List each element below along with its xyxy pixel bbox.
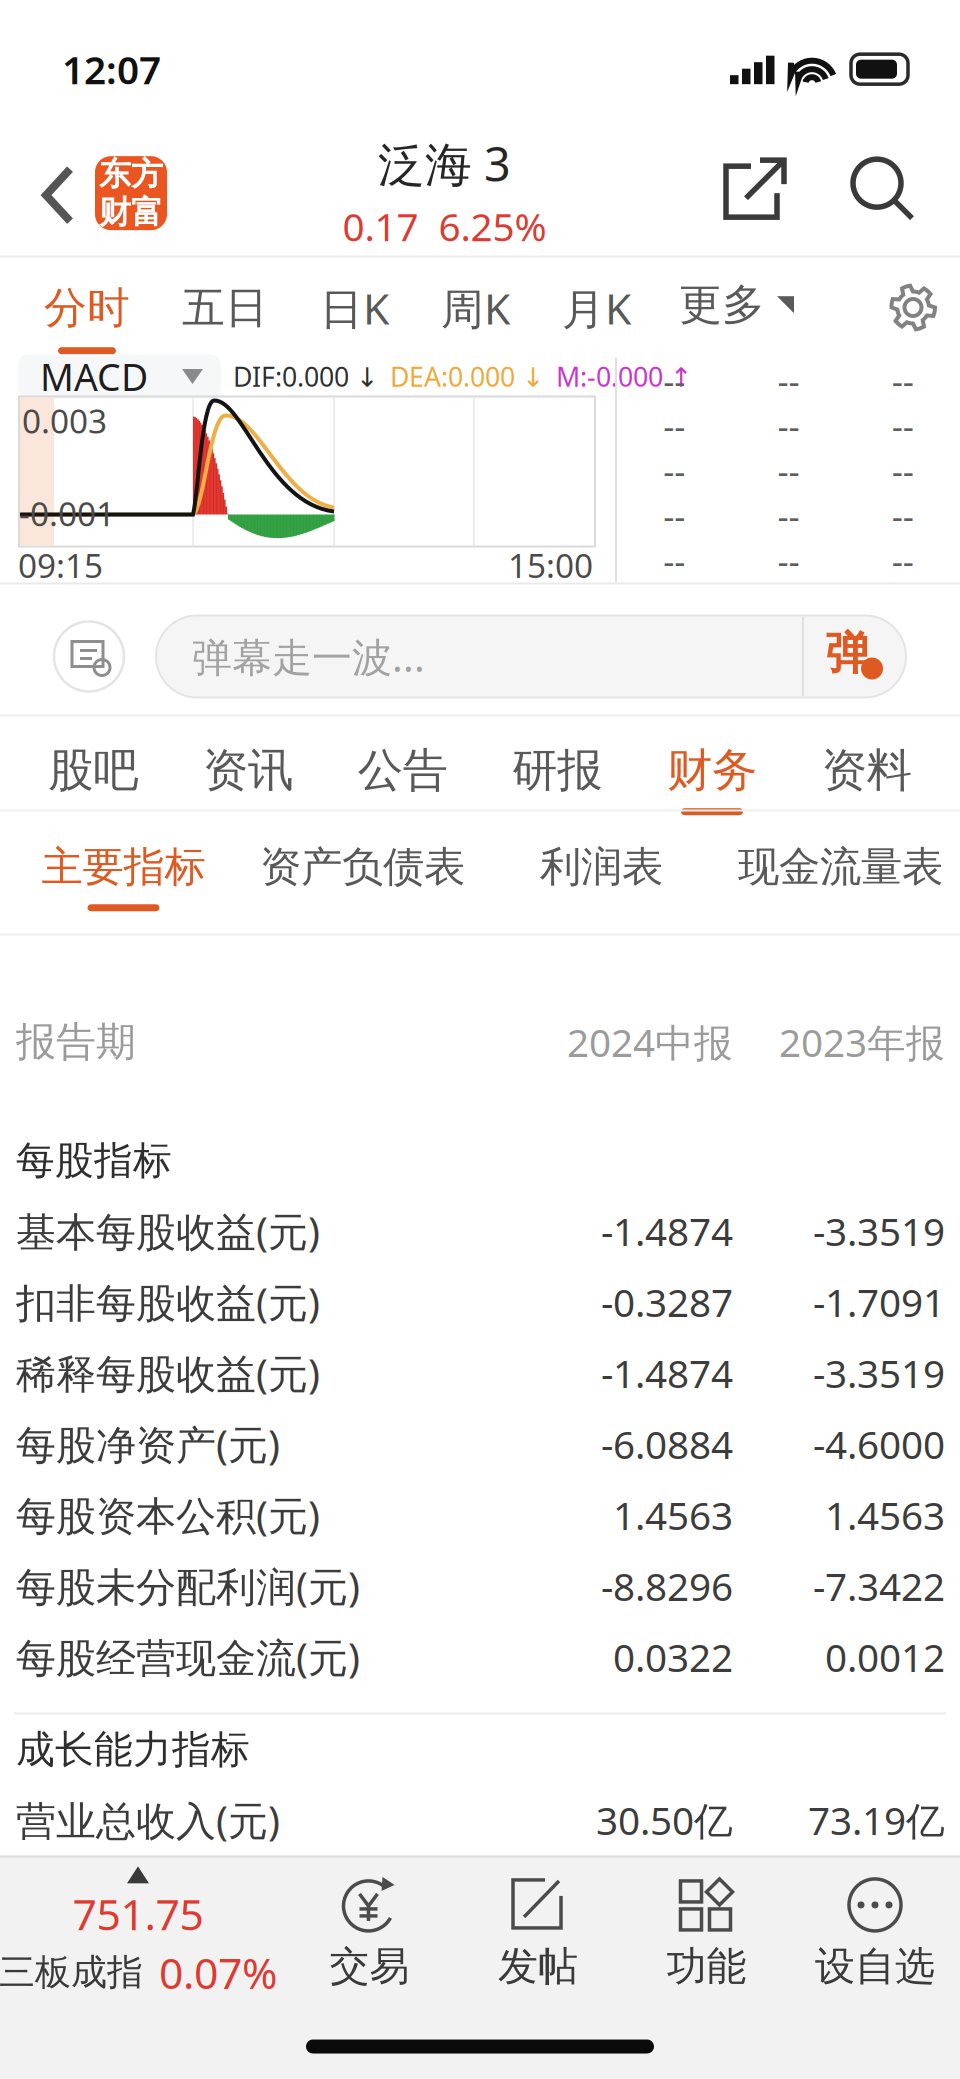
staticText: 主要指标 — [41, 841, 205, 892]
staticText: -4.6000 — [813, 1418, 945, 1470]
staticText: -- — [892, 402, 914, 448]
staticText: 1.4563 — [825, 1489, 945, 1541]
button[interactable]: 周K — [415, 257, 536, 357]
staticText: 利润表 — [540, 841, 663, 892]
button[interactable]: 资料 — [789, 716, 944, 815]
staticText: 扣非每股收益(元) — [16, 1275, 320, 1328]
staticText: 0.17 6.25% — [342, 200, 546, 252]
staticText: -1.4874 — [601, 1205, 733, 1257]
staticText: 财务 — [667, 742, 757, 798]
staticText: 09:15 — [18, 543, 103, 587]
button[interactable]: 股吧 — [16, 716, 171, 815]
button[interactable]: 功能 — [631, 1876, 781, 1991]
button[interactable]: 现金流量表 — [721, 811, 960, 911]
staticText: -3.3519 — [813, 1205, 945, 1257]
button[interactable]: 财务 — [635, 716, 789, 815]
staticText: 0.07% — [159, 1944, 277, 2001]
staticText: -6.0884 — [601, 1418, 733, 1470]
staticText: 更多 — [679, 278, 765, 331]
staticText: 每股净资产(元) — [16, 1417, 280, 1470]
button[interactable]: MACD — [18, 354, 221, 398]
staticText: 月K — [562, 280, 631, 336]
staticText: -- — [663, 357, 685, 403]
staticText: 营业总收入(元) — [16, 1793, 280, 1846]
staticText: -3.3519 — [813, 1347, 945, 1399]
staticText: 12:07 — [62, 43, 161, 95]
staticText: 报告期 — [16, 1017, 136, 1066]
staticText: 稀释每股收益(元) — [16, 1346, 320, 1399]
staticText: 资讯 — [203, 742, 293, 798]
button[interactable]: 弹幕走一波... — [156, 615, 906, 697]
staticText: -- — [663, 402, 685, 448]
button[interactable]: 公告 — [325, 716, 480, 815]
button[interactable]: 更多 — [657, 257, 816, 357]
staticText: 现金流量表 — [738, 841, 943, 892]
button[interactable]: 东方 — [95, 148, 167, 230]
staticText: -- — [892, 492, 914, 538]
staticText: 交易 — [329, 1942, 409, 1991]
staticText: M:-0.000 ↑ — [556, 359, 692, 394]
staticText: -- — [777, 537, 799, 583]
button[interactable]: Settings — [888, 282, 938, 332]
staticText: -7.3422 — [813, 1560, 945, 1612]
staticText: -- — [892, 357, 914, 403]
staticText: 财富 — [99, 193, 163, 232]
staticText: -1.7091 — [813, 1276, 945, 1328]
staticText: 0.0322 — [613, 1631, 733, 1683]
staticText: -- — [663, 537, 685, 583]
staticText: -- — [777, 402, 799, 448]
staticText: 研报 — [512, 742, 602, 798]
button[interactable]: 分时 — [18, 257, 156, 357]
staticText: -1.4874 — [601, 1347, 733, 1399]
staticText: 每股资本公积(元) — [16, 1488, 320, 1541]
button[interactable]: Comments — [52, 619, 126, 693]
staticText: 功能 — [666, 1942, 746, 1991]
staticText: 每股未分配利润(元) — [16, 1559, 360, 1612]
staticText: -- — [663, 492, 685, 538]
button[interactable]: Search — [850, 156, 916, 222]
staticText: 1.4563 — [613, 1489, 733, 1541]
staticText: -0.001 — [19, 491, 115, 535]
staticText: -- — [663, 447, 685, 493]
button[interactable]: 资产负债表 — [243, 811, 482, 911]
button[interactable]: 日K — [294, 257, 415, 357]
button[interactable]: Back — [26, 153, 90, 225]
button[interactable]: 研报 — [480, 716, 635, 815]
button[interactable]: 资讯 — [171, 716, 325, 815]
staticText: -- — [777, 492, 799, 538]
button[interactable]: 月K — [536, 257, 657, 357]
staticText: 资产负债表 — [260, 841, 465, 892]
staticText: -- — [892, 447, 914, 493]
button[interactable]: 利润表 — [482, 811, 721, 911]
staticText: 30.50亿 — [596, 1794, 733, 1846]
staticText: 资料 — [822, 742, 912, 798]
button[interactable]: 交易 — [294, 1876, 444, 1991]
staticText: 泛海 3 — [378, 132, 511, 194]
button[interactable]: Share — [722, 157, 788, 221]
staticText: 成长能力指标 — [16, 1726, 250, 1773]
staticText: 股吧 — [48, 742, 138, 798]
staticText: 公告 — [358, 742, 448, 798]
staticText: 2023年报 — [779, 1016, 945, 1068]
staticText: 0.0012 — [825, 1631, 945, 1683]
staticText: 基本每股收益(元) — [16, 1204, 320, 1257]
staticText: 分时 — [44, 282, 130, 334]
staticText: 每股经营现金流(元) — [16, 1630, 360, 1683]
button[interactable]: 发帖 — [463, 1876, 613, 1991]
button[interactable]: 设自选 — [800, 1876, 950, 1991]
staticText: 73.19亿 — [808, 1794, 945, 1846]
staticText: 设自选 — [815, 1942, 935, 1991]
staticText: -8.8296 — [601, 1560, 733, 1612]
staticText: 三板成指 — [0, 1950, 143, 1994]
staticText: -- — [777, 357, 799, 403]
staticText: 2024中报 — [567, 1016, 733, 1068]
button[interactable]: 主要指标 — [4, 811, 243, 911]
staticText: 五日 — [182, 282, 268, 334]
staticText: MACD — [40, 352, 148, 401]
button[interactable]: 五日 — [156, 257, 294, 357]
staticText: -- — [892, 537, 914, 583]
staticText: 每股指标 — [16, 1137, 172, 1184]
staticText: 东方 — [99, 154, 163, 194]
staticText: -- — [777, 447, 799, 493]
staticText: 弹幕走一波... — [192, 630, 425, 683]
